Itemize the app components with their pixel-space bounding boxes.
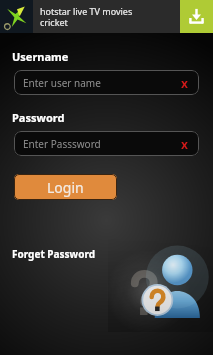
- staticText: x: [181, 75, 188, 91]
- button[interactable]: Enter Passsword: [14, 131, 199, 156]
- staticText: Login: [47, 178, 84, 197]
- button[interactable]: Install: [180, 0, 213, 33]
- button[interactable]: Login: [14, 174, 117, 200]
- staticText: x: [181, 136, 188, 152]
- button[interactable]: Enter user name: [14, 70, 199, 95]
- staticText: Enter user name: [23, 76, 101, 90]
- staticText: hotstar live TV movies cricket: [40, 5, 133, 28]
- staticText: Enter Passsword: [23, 137, 101, 151]
- staticText: Forget Password: [12, 247, 95, 261]
- staticText: Password: [12, 110, 65, 125]
- button[interactable]: hotstar live TV movies cricket: [0, 0, 213, 33]
- staticText: Username: [12, 49, 69, 64]
- button[interactable]: Forget Password: [12, 247, 95, 261]
